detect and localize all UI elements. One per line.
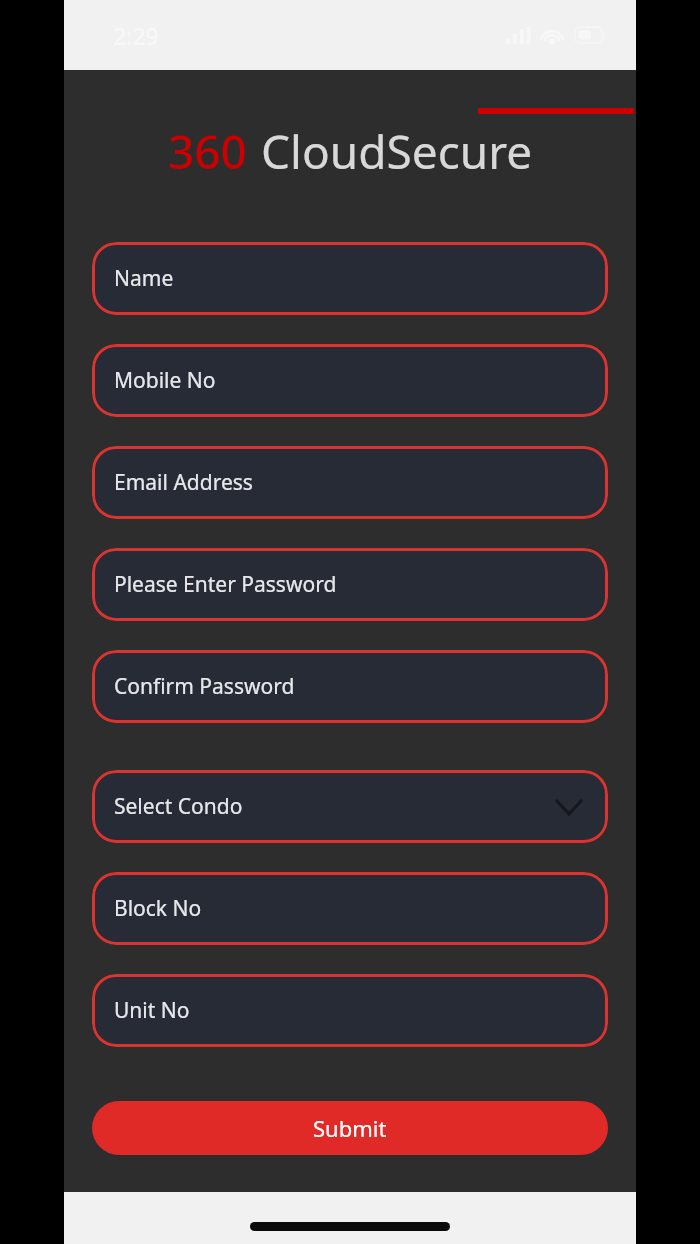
staticText: Block No [114,894,202,923]
button[interactable]: Mobile No [92,344,608,417]
button[interactable]: Block No [92,872,608,945]
staticText: CloudSecure [261,120,533,180]
staticText: Select Condo [114,792,243,821]
button[interactable]: Submit [92,1101,608,1155]
button[interactable]: Unit No [92,974,608,1047]
staticText: Mobile No [114,366,216,395]
button[interactable]: Name [92,242,608,315]
staticText: Unit No [114,996,190,1025]
staticText: Name [114,264,174,293]
button[interactable]: Confirm Password [92,650,608,723]
staticText: Please Enter Password [114,570,337,599]
staticText: Submit [313,1113,387,1143]
button[interactable]: Please Enter Password [92,548,608,621]
staticText: Confirm Password [114,672,295,701]
button[interactable]: Email Address [92,446,608,519]
staticText: 360 [168,120,247,180]
button[interactable]: Select Condo [92,770,608,843]
staticText: Email Address [114,468,253,497]
other: Open condo dropdown [552,790,586,824]
